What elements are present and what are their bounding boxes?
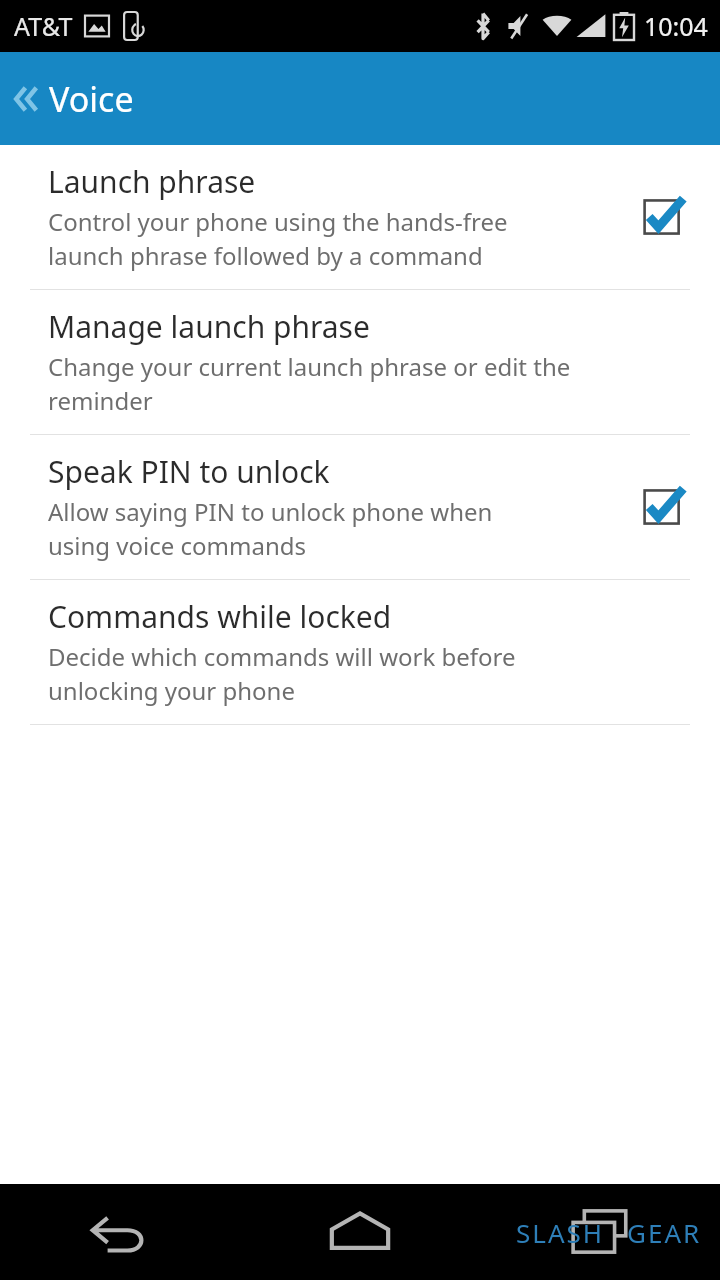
button[interactable]: Toggle Speak PIN to unlock [636,480,690,534]
button[interactable]: Speak PIN to unlock [0,435,720,579]
staticText: Speak PIN to unlock [48,451,330,492]
button[interactable]: Commands while locked [0,580,720,724]
staticText: Allow saying PIN to unlock phone when us… [48,495,493,563]
button[interactable]: Home [240,1184,480,1280]
staticText: SLASH [516,1215,605,1250]
button[interactable]: Back [0,52,720,145]
staticText: Launch phrase [48,161,256,202]
other: Back [12,82,38,116]
staticText: Manage launch phrase [48,306,370,347]
button[interactable]: Back [0,1184,240,1280]
staticText: Decide which commands will work before u… [48,640,516,708]
button[interactable]: Launch phrase [0,145,720,289]
staticText: GEAR [627,1215,702,1250]
button[interactable]: Recent apps [480,1184,720,1280]
button[interactable]: Toggle Launch phrase [636,190,690,244]
staticText: Control your phone using the hands-free … [48,205,508,273]
staticText: Voice [49,76,134,122]
staticText: 10:04 [644,9,708,43]
staticText: AT&T [14,9,73,43]
button[interactable]: Manage launch phrase [0,290,720,434]
staticText: Commands while locked [48,596,392,637]
staticText: Change your current launch phrase or edi… [48,350,571,418]
